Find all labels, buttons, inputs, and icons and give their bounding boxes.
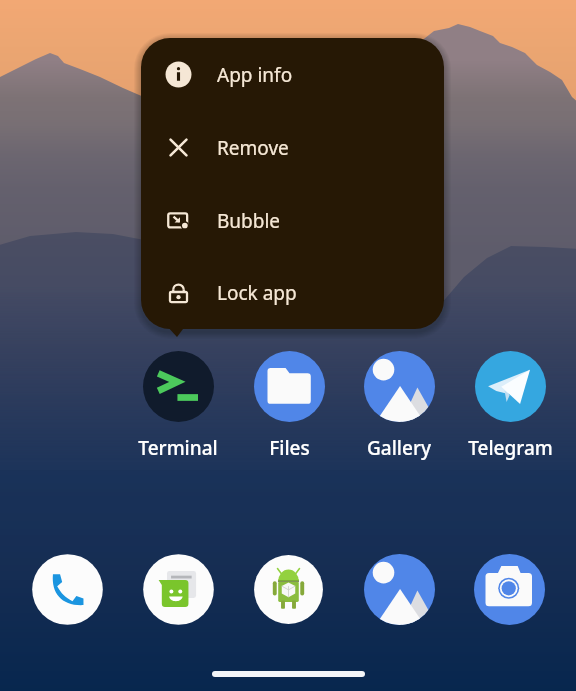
staticText: Remove — [217, 135, 289, 161]
staticText: Gallery — [367, 435, 431, 461]
button[interactable]: Telegram — [455, 351, 565, 461]
staticText: App info — [217, 62, 293, 88]
staticText: Lock app — [217, 280, 297, 306]
button[interactable]: App info — [141, 38, 444, 111]
button[interactable]: Camera — [474, 554, 545, 625]
staticText: Telegram — [468, 435, 553, 461]
staticText: Terminal — [138, 435, 218, 461]
staticText: Files — [269, 435, 310, 461]
button[interactable]: Messages — [143, 554, 214, 625]
button[interactable]: Android — [253, 554, 324, 625]
button[interactable]: Gallery — [344, 351, 454, 461]
button[interactable]: Phone — [32, 554, 103, 625]
button[interactable]: Remove — [141, 111, 444, 184]
button[interactable]: Bubble — [141, 184, 444, 257]
button[interactable]: Terminal — [123, 351, 233, 461]
button[interactable]: Files — [234, 351, 344, 461]
button[interactable]: Photos — [364, 554, 435, 625]
staticText: Bubble — [217, 208, 281, 234]
button[interactable]: Lock app — [141, 257, 444, 329]
